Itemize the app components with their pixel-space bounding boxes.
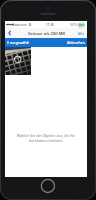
button[interactable]: Back xyxy=(5,28,15,38)
staticText: Abbrechen xyxy=(67,40,85,45)
button[interactable]: 0 ausgewählt xyxy=(7,40,29,45)
staticText: Grösser als 200 MB xyxy=(28,31,65,36)
staticText: 11:26 xyxy=(46,23,55,27)
button[interactable]: Abbrechen xyxy=(67,40,85,45)
staticText: Alle xyxy=(78,31,85,36)
button[interactable]: More options xyxy=(78,28,85,38)
staticText: Wählen Sie die Objekte aus, die Sie hoch… xyxy=(10,133,82,143)
button[interactable]: Photo thumbnail xyxy=(5,47,31,75)
staticText: 0 ausgewählt xyxy=(7,40,29,45)
staticText: 93 % xyxy=(70,23,77,27)
staticText: Swisscom xyxy=(13,23,27,27)
